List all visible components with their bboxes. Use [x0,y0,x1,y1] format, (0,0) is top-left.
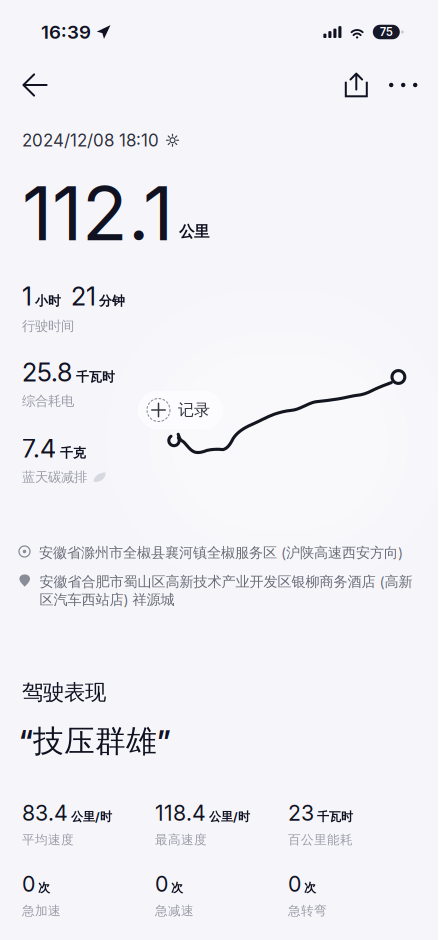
staticText: 急减速 [155,903,194,919]
staticText: 112.1 [22,168,173,258]
staticText: 综合耗电 [22,393,74,409]
button[interactable]: 记录 [138,391,223,429]
staticText: 驾驶表现 [22,679,106,706]
button[interactable]: Back [10,61,60,109]
staticText: 次 [171,880,183,895]
staticText: 千瓦时 [317,809,353,824]
staticText: 23 [288,800,314,826]
staticText: 83.4 [22,800,68,826]
staticText: 次 [304,880,316,895]
staticText: 急加速 [22,903,61,919]
staticText: 2024/12/08 18:10 [22,130,159,150]
button[interactable]: Share [333,61,379,109]
staticText: 百公里能耗 [288,832,353,848]
staticText: 记录 [178,400,210,420]
staticText: 分钟 [99,293,125,309]
staticText: 公里 [179,222,209,241]
staticText: 蓝天碳减排 [22,469,87,485]
staticText: 75 [380,25,393,39]
staticText: 千瓦时 [76,369,115,385]
staticText: 公里/时 [209,809,250,824]
staticText: 21 [71,281,96,312]
staticText: 0 [288,871,301,897]
button[interactable]: More options [379,61,427,109]
staticText: 平均速度 [22,832,74,848]
staticText: 1 [22,281,32,312]
staticText: 安徽省滁州市全椒县襄河镇全椒服务区 (沪陕高速西安方向) [39,544,403,562]
staticText: 16:39 [41,21,91,43]
staticText: 25.8 [22,357,72,388]
staticText: 7.4 [22,433,56,464]
staticText: 次 [38,880,50,895]
staticText: 最高速度 [155,832,207,848]
staticText: 公里/时 [71,809,112,824]
staticText: 千克 [60,445,86,461]
staticText: 小时 [35,293,61,309]
staticText: 118.4 [155,800,206,826]
staticText: 急转弯 [288,903,327,919]
staticText: 安徽省合肥市蜀山区高新技术产业开发区银柳商务酒店 (高新区汽车西站店) 祥源城 [39,573,412,609]
staticText: 0 [22,871,35,897]
staticText: “技压群雄” [19,722,171,761]
staticText: 行驶时间 [22,318,74,334]
staticText: 0 [155,871,168,897]
